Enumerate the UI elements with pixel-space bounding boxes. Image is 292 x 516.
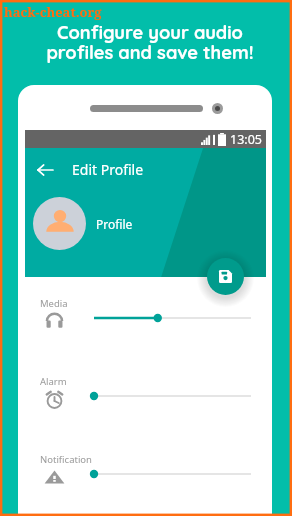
button[interactable] (89, 467, 256, 481)
button[interactable] (89, 311, 256, 325)
button[interactable]: Back (25, 150, 65, 190)
staticText: hack-cheat.org (4, 3, 102, 21)
button[interactable] (89, 389, 256, 403)
staticText: Alarm (40, 375, 67, 388)
button[interactable]: Profile picture (33, 197, 86, 250)
staticText: 13:05 (230, 131, 262, 148)
staticText: Edit Profile (72, 160, 144, 179)
staticText: Notification (40, 453, 92, 466)
staticText: Media (40, 297, 68, 310)
staticText: Profile (96, 216, 133, 232)
staticText: Configure your audio profiles and save t… (4, 21, 292, 64)
button[interactable]: Save profile (207, 258, 244, 295)
